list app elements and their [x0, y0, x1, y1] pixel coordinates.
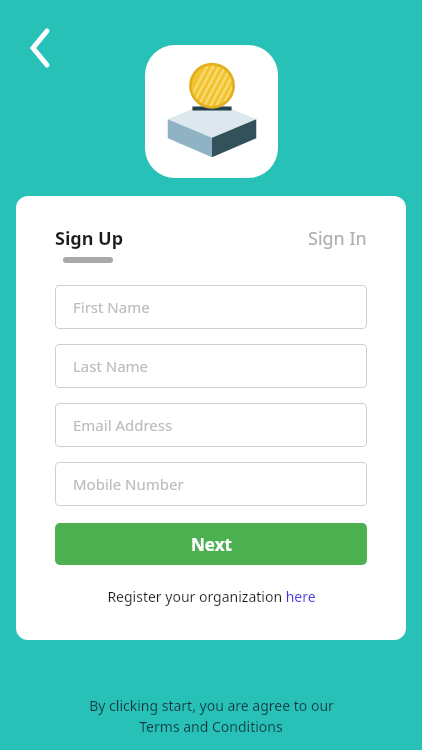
- button[interactable]: Last Name: [55, 344, 367, 388]
- button[interactable]: Register your organization here: [55, 587, 367, 606]
- staticText: Terms and Conditions: [139, 717, 283, 736]
- button[interactable]: Mobile Number: [55, 462, 367, 506]
- staticText: Email Address: [73, 415, 173, 435]
- staticText: Mobile Number: [73, 474, 184, 494]
- staticText: Register your organization here: [107, 587, 316, 606]
- staticText: Sign Up: [55, 226, 124, 251]
- button[interactable]: Sign Up: [55, 226, 124, 263]
- button[interactable]: By clicking start, you are agree to our: [0, 696, 422, 736]
- staticText: Sign In: [308, 226, 367, 251]
- button[interactable]: First Name: [55, 285, 367, 329]
- button[interactable]: Back: [16, 26, 60, 70]
- button[interactable]: Sign In: [308, 226, 367, 251]
- button[interactable]: Email Address: [55, 403, 367, 447]
- staticText: By clicking start, you are agree to our: [89, 696, 334, 715]
- staticText: First Name: [73, 297, 150, 317]
- staticText: Last Name: [73, 356, 149, 376]
- button[interactable]: Next: [55, 523, 367, 565]
- staticText: Next: [191, 533, 232, 556]
